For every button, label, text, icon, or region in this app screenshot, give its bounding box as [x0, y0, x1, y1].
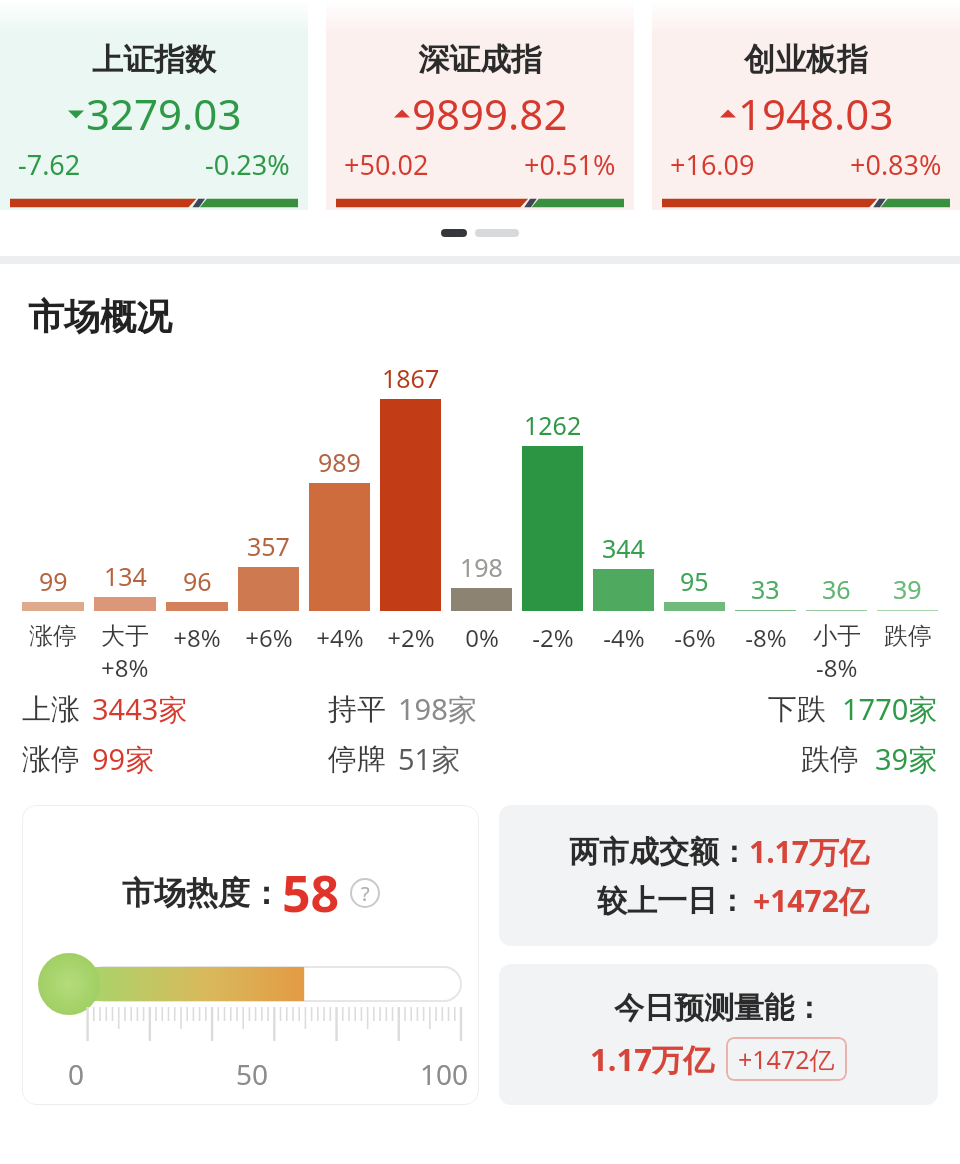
button[interactable]: 344	[593, 361, 654, 677]
staticText: +0.51%	[524, 146, 616, 183]
staticText: -8%	[745, 621, 787, 654]
staticText: 100	[420, 1055, 469, 1093]
button[interactable]: 33	[735, 361, 796, 677]
staticText: 0	[68, 1055, 85, 1093]
staticText: +1472亿	[738, 1042, 835, 1076]
staticText: 9899.82	[412, 85, 568, 142]
staticText: 上证指数	[92, 40, 216, 79]
staticText: +0.83%	[850, 146, 942, 183]
button[interactable]: 95	[664, 361, 725, 677]
staticText: 36	[822, 572, 851, 606]
staticText: -7.62	[18, 146, 81, 183]
staticText: 上涨	[22, 691, 80, 728]
staticText: 0%	[465, 621, 499, 654]
button[interactable]: 今日预测量能：	[499, 964, 938, 1105]
staticText: 1867	[382, 361, 440, 395]
button[interactable]: 1867	[380, 361, 441, 677]
staticText: +8%	[173, 621, 221, 654]
staticText: 39家	[875, 739, 938, 779]
button[interactable]: 99	[22, 361, 84, 677]
button[interactable]: 989	[309, 361, 370, 677]
staticText: 跌停	[801, 741, 859, 778]
staticText: 市场概况	[28, 294, 172, 339]
staticText: 今日预测量能：	[614, 989, 824, 1027]
staticText: 3279.03	[86, 85, 242, 142]
staticText: 创业板指	[744, 40, 868, 79]
staticText: 两市成交额：	[569, 833, 749, 871]
staticText: 小于	[813, 621, 861, 651]
staticText: 1.17万亿	[590, 1038, 714, 1080]
staticText: 198家	[398, 689, 477, 729]
button[interactable]: 上证指数	[0, 0, 308, 210]
staticText: ?	[361, 880, 370, 907]
staticText: 344	[602, 531, 645, 565]
staticText: 跌停	[884, 621, 932, 651]
staticText: 1770家	[842, 689, 938, 729]
staticText: 99家	[92, 739, 155, 779]
staticText: -4%	[603, 621, 645, 654]
staticText: 96	[183, 564, 212, 598]
staticText: +50.02	[344, 146, 429, 183]
staticText: 1262	[524, 408, 582, 442]
staticText: +4%	[316, 621, 364, 654]
button[interactable]: 36	[806, 361, 867, 677]
staticText: 989	[318, 445, 361, 479]
staticText: 50	[236, 1055, 269, 1093]
button[interactable]: 深证成指	[326, 0, 634, 210]
button[interactable]: 357	[238, 361, 299, 677]
staticText: 58	[282, 859, 340, 927]
staticText: -0.23%	[205, 146, 290, 183]
staticText: 357	[247, 529, 290, 563]
staticText: -2%	[532, 621, 574, 654]
button[interactable]: 市场热度：	[22, 805, 479, 1105]
staticText: 51家	[398, 739, 461, 779]
staticText: -6%	[674, 621, 716, 654]
staticText: 涨停	[22, 741, 80, 778]
staticText: 下跌	[768, 691, 826, 728]
staticText: +6%	[245, 621, 293, 654]
staticText: +2%	[387, 621, 435, 654]
staticText: 95	[680, 564, 709, 598]
staticText: 33	[751, 572, 780, 606]
button[interactable]	[475, 229, 519, 237]
staticText: 39	[893, 572, 922, 606]
staticText: 99	[39, 564, 68, 598]
staticText: +1472亿	[753, 880, 869, 921]
button[interactable]: 198	[451, 361, 512, 677]
staticText: 停牌	[328, 741, 386, 778]
staticText: 市场热度：	[122, 873, 282, 913]
staticText: 深证成指	[418, 40, 542, 79]
staticText: 1948.03	[738, 85, 894, 142]
button[interactable]: 两市成交额：	[499, 805, 938, 946]
staticText: 3443家	[92, 689, 188, 729]
staticText: 较上一日：	[597, 882, 747, 920]
button[interactable]: 134	[94, 361, 156, 677]
staticText: 198	[460, 550, 503, 584]
button[interactable]: 39	[877, 361, 938, 677]
staticText: 涨停	[29, 621, 77, 651]
button[interactable]: 创业板指	[652, 0, 960, 210]
staticText: 大于	[101, 621, 149, 651]
staticText: 持平	[328, 691, 386, 728]
button[interactable]: 1262	[522, 361, 583, 677]
button[interactable]	[441, 229, 467, 237]
staticText: 134	[104, 559, 147, 593]
staticText: +8%	[101, 651, 149, 677]
staticText: 1.17万亿	[749, 831, 869, 872]
staticText: +16.09	[670, 146, 755, 183]
staticText: -8%	[816, 651, 858, 677]
button[interactable]: 96	[166, 361, 228, 677]
button[interactable]: 说明	[350, 878, 380, 908]
